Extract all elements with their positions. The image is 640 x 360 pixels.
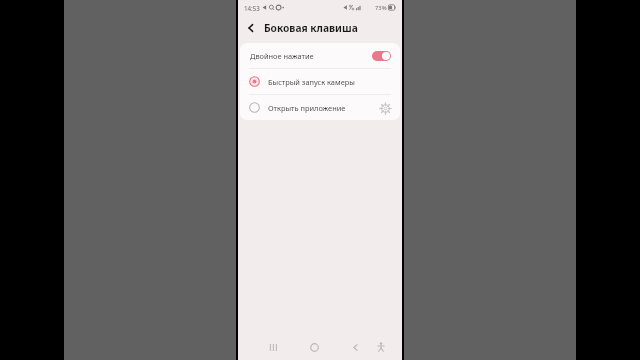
button[interactable]: Двойное нажатие bbox=[240, 43, 400, 68]
button[interactable]: Double press bbox=[372, 51, 391, 61]
button[interactable]: Открыть приложение bbox=[240, 95, 400, 120]
staticText: Боковая клавиша bbox=[264, 21, 358, 35]
button[interactable]: Settings bbox=[377, 100, 393, 116]
staticText: Открыть приложение bbox=[268, 103, 346, 113]
button[interactable]: Быстрый запуск камеры bbox=[240, 69, 400, 94]
staticText: 14:53 bbox=[244, 4, 260, 12]
button[interactable]: Recent apps bbox=[262, 336, 284, 358]
button[interactable]: Home bbox=[303, 336, 325, 358]
button[interactable]: Accessibility bbox=[370, 336, 392, 358]
staticText: Быстрый запуск камеры bbox=[268, 77, 355, 87]
button[interactable]: Back bbox=[344, 336, 366, 358]
staticText: Двойное нажатие bbox=[250, 51, 314, 61]
button[interactable]: Back bbox=[238, 15, 264, 41]
staticText: 73% bbox=[375, 4, 387, 12]
